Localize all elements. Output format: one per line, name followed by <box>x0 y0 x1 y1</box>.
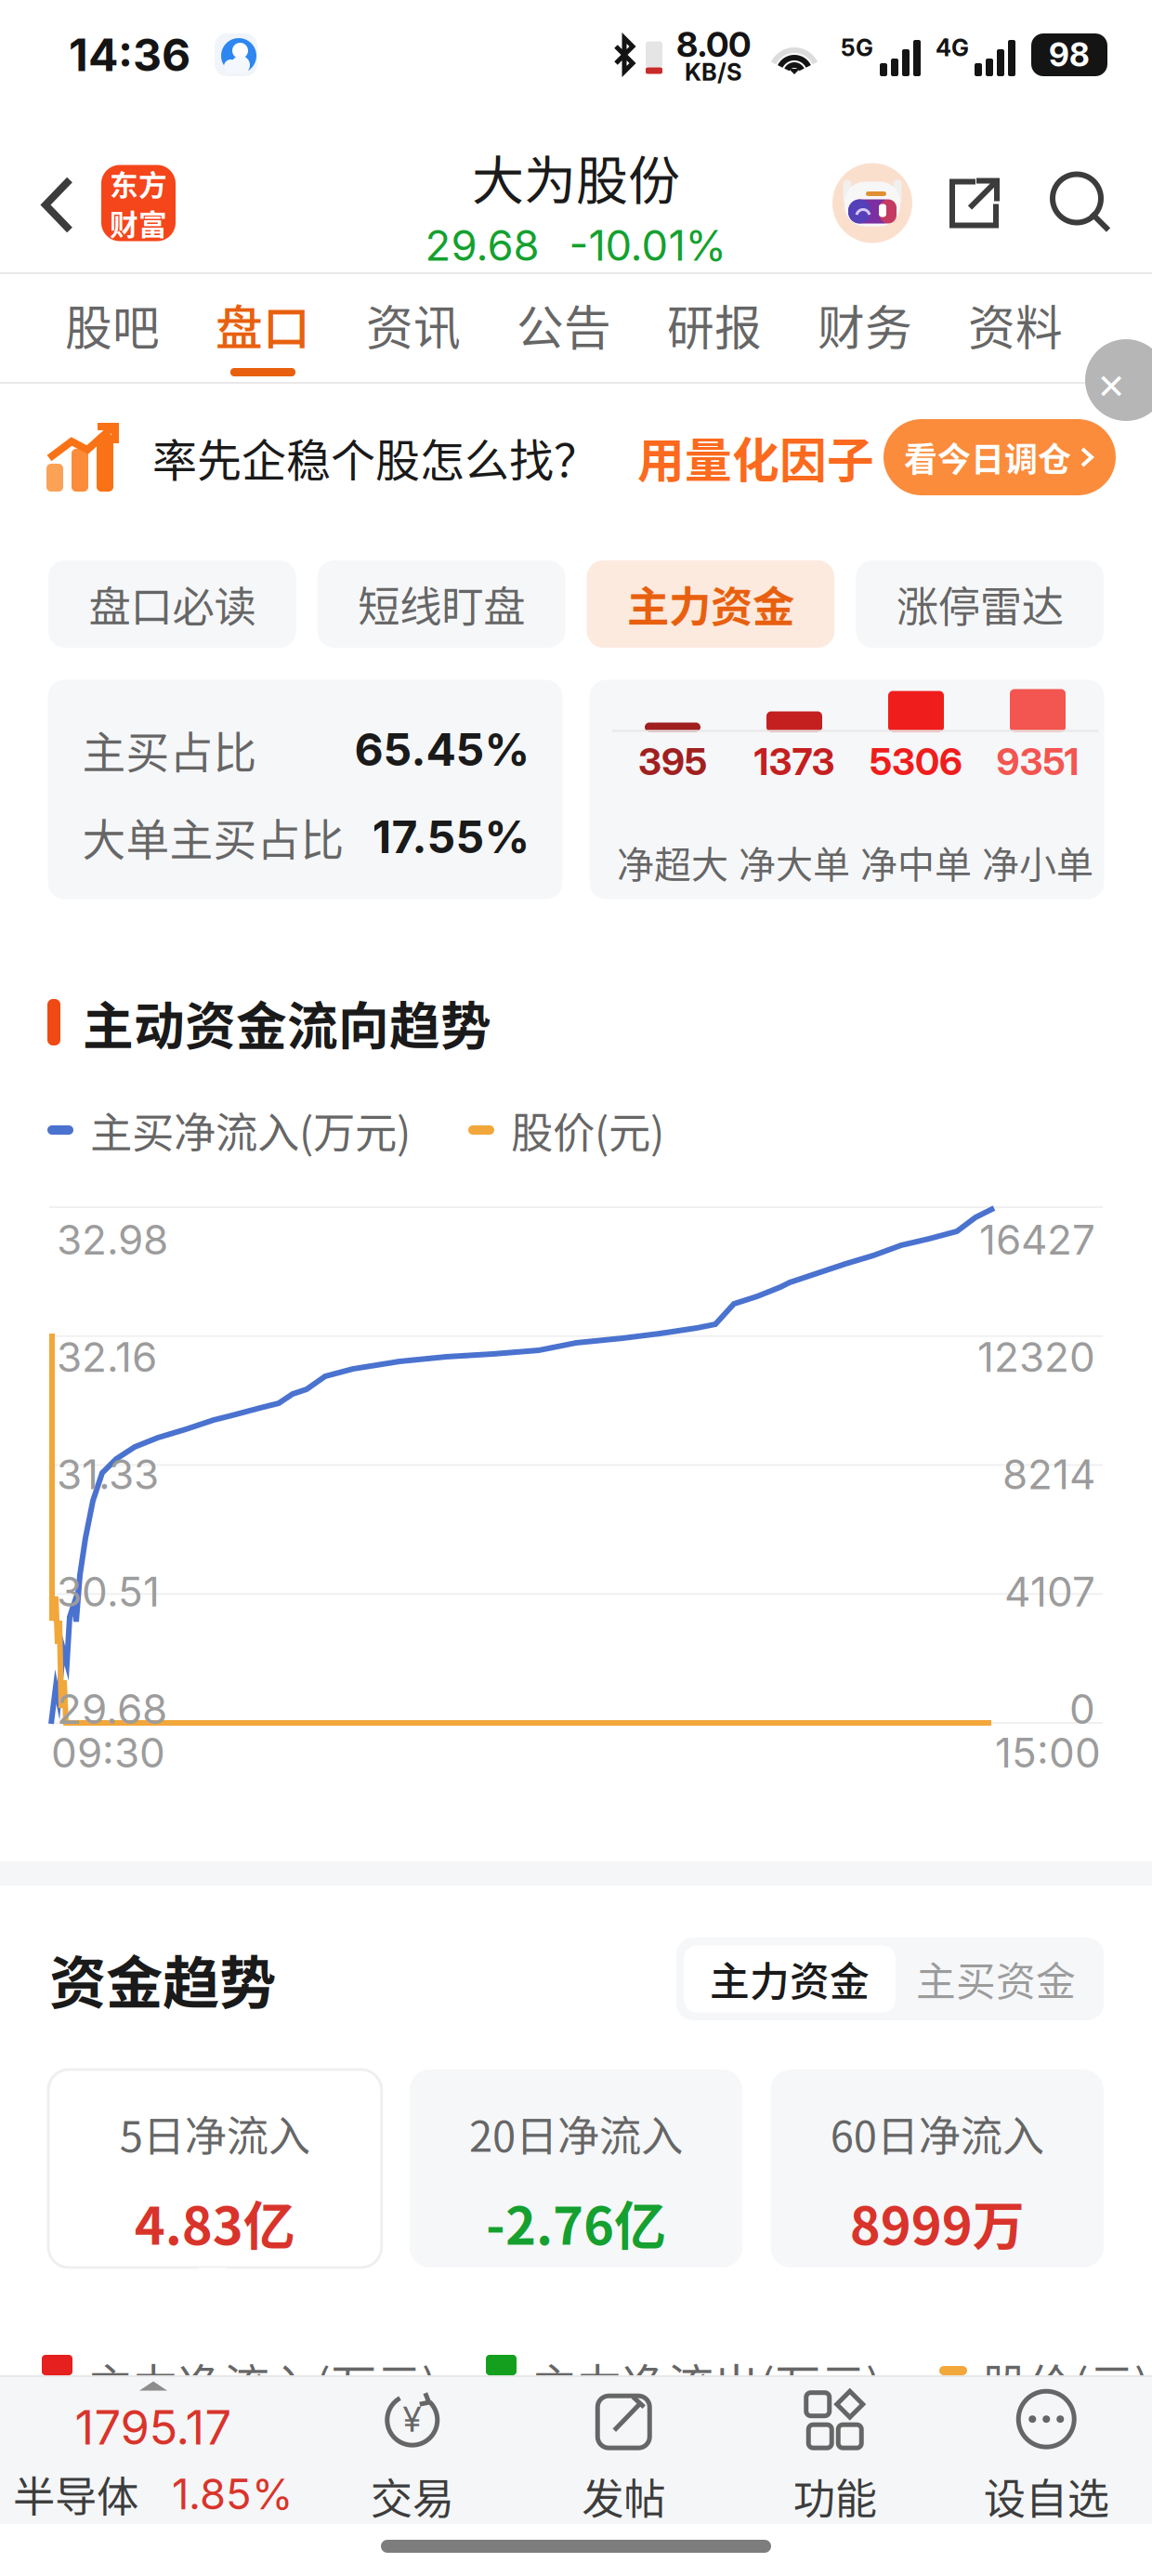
staticText: 用量化因子 <box>637 423 874 491</box>
staticText: 股吧 <box>65 290 160 359</box>
staticText: 短线盯盘 <box>358 574 525 635</box>
staticText: 股价(元) <box>511 1100 664 1161</box>
staticText: 主动资金流向趋势 <box>83 985 491 1059</box>
staticText: 4107 <box>1004 1567 1095 1616</box>
staticText: 1373 <box>754 739 835 784</box>
staticText: 东方 <box>110 163 167 204</box>
button[interactable]: 功能 <box>729 2377 941 2524</box>
staticText: 资讯 <box>366 290 461 359</box>
staticText: 32.98 <box>57 1215 168 1264</box>
staticText: 主买净流入(万元) <box>90 1100 411 1161</box>
button[interactable]: 股吧 <box>37 274 188 384</box>
staticText: 大为股份 <box>472 139 680 214</box>
staticText: 5G <box>841 33 873 62</box>
button[interactable]: Share <box>942 171 1005 235</box>
staticText: 15:00 <box>995 1728 1101 1777</box>
staticText: 率先企稳个股怎么找？ <box>152 425 598 489</box>
staticText: 半导体 <box>13 2463 138 2524</box>
staticText: 20日净流入 <box>469 2103 683 2164</box>
staticText: -2.76亿 <box>486 2184 666 2260</box>
staticText: ✕ <box>1097 366 1126 407</box>
staticText: 主力净流入(万元) <box>87 2349 438 2416</box>
button[interactable]: 短线盯盘 <box>318 560 565 648</box>
staticText: 主买资金 <box>916 1950 1076 2008</box>
staticText: 395 <box>638 739 707 784</box>
staticText: 17.55% <box>372 810 530 864</box>
staticText: 14:36 <box>69 28 190 82</box>
staticText: 1795.17 <box>75 2399 232 2456</box>
staticText: 股价(元) <box>982 2349 1150 2416</box>
button[interactable]: 资料 <box>940 274 1091 384</box>
staticText: 5日净流入 <box>120 2103 310 2164</box>
staticText: 5306 <box>870 739 962 784</box>
button[interactable]: 盘口 <box>188 274 338 384</box>
button[interactable]: ¥ <box>307 2377 518 2524</box>
staticText: 净超大 <box>617 835 728 889</box>
staticText: 主力净流出(万元) <box>531 2349 882 2416</box>
button[interactable]: 涨停雷达 <box>856 560 1104 648</box>
staticText: 财富 <box>110 202 167 243</box>
staticText: 功能 <box>793 2466 877 2527</box>
staticText: 16427 <box>979 1215 1095 1264</box>
staticText: 公告 <box>517 290 611 359</box>
staticText: 交易 <box>370 2466 454 2527</box>
button[interactable]: 公告 <box>489 274 639 384</box>
button[interactable]: 财务 <box>790 274 940 384</box>
staticText: 净小单 <box>982 835 1093 889</box>
staticText: ¥ <box>403 2398 422 2440</box>
staticText: 主买占比 <box>82 718 257 781</box>
button[interactable]: 资讯 <box>338 274 489 384</box>
staticText: 60日净流入 <box>830 2103 1044 2164</box>
button[interactable]: East Money <box>101 165 176 241</box>
staticText: KB/S <box>685 58 742 86</box>
staticText: 9351 <box>996 739 1079 784</box>
staticText: 32.16 <box>57 1332 157 1382</box>
staticText: 发帖 <box>582 2466 665 2527</box>
staticText: 主力资金 <box>710 1950 870 2008</box>
staticText: 29.68 <box>425 220 539 271</box>
button[interactable]: 发帖 <box>518 2377 729 2524</box>
staticText: 资料 <box>968 290 1063 359</box>
staticText: 大单主买占比 <box>82 805 344 868</box>
staticText: 净大单 <box>739 835 850 889</box>
staticText: 研报 <box>667 290 762 359</box>
button[interactable]: 主力资金 <box>587 560 835 648</box>
button[interactable]: 60日净流入 <box>770 2070 1104 2267</box>
staticText: 盘口 <box>216 290 310 359</box>
button[interactable]: 盘口必读 <box>48 560 296 648</box>
staticText: 主力资金 <box>627 574 794 635</box>
button[interactable]: 5日净流入 <box>48 2070 382 2267</box>
button[interactable]: 设自选 <box>941 2377 1152 2524</box>
staticText: 看今日调仓 <box>904 433 1071 481</box>
staticText: 8214 <box>1002 1450 1095 1499</box>
button[interactable]: 研报 <box>639 274 790 384</box>
staticText: 29.68 <box>57 1684 167 1734</box>
staticText: -10.01% <box>569 220 727 271</box>
staticText: 12320 <box>977 1332 1095 1382</box>
staticText: 09:30 <box>51 1728 165 1777</box>
staticText: 资金趋势 <box>49 1938 276 2020</box>
button[interactable]: AI assistant <box>832 163 912 243</box>
button[interactable]: 20日净流入 <box>409 2070 743 2267</box>
staticText: 8999万 <box>850 2184 1024 2260</box>
button[interactable]: 主买资金 <box>896 1945 1096 2012</box>
staticText: 8.00 <box>676 23 751 65</box>
button[interactable]: Close ad <box>1085 339 1152 421</box>
staticText: 30.51 <box>57 1567 160 1616</box>
staticText: 盘口必读 <box>89 574 256 635</box>
staticText: 财务 <box>818 290 912 359</box>
staticText: 涨停雷达 <box>896 574 1063 635</box>
staticText: 4G <box>936 33 969 62</box>
staticText: 98 <box>1049 35 1090 74</box>
button[interactable]: 1795.17 <box>0 2377 307 2524</box>
button[interactable]: 率先企稳个股怎么找？ <box>0 384 1152 531</box>
staticText: 31.33 <box>57 1450 159 1499</box>
button[interactable]: 主力资金 <box>684 1945 896 2012</box>
button[interactable]: Back <box>11 151 100 255</box>
staticText: 65.45% <box>354 723 530 777</box>
staticText: 净中单 <box>860 835 972 889</box>
staticText: 设自选 <box>984 2466 1109 2527</box>
button[interactable]: Search <box>1048 170 1115 237</box>
staticText: 0 <box>1069 1684 1095 1734</box>
staticText: 1.85% <box>172 2468 294 2519</box>
